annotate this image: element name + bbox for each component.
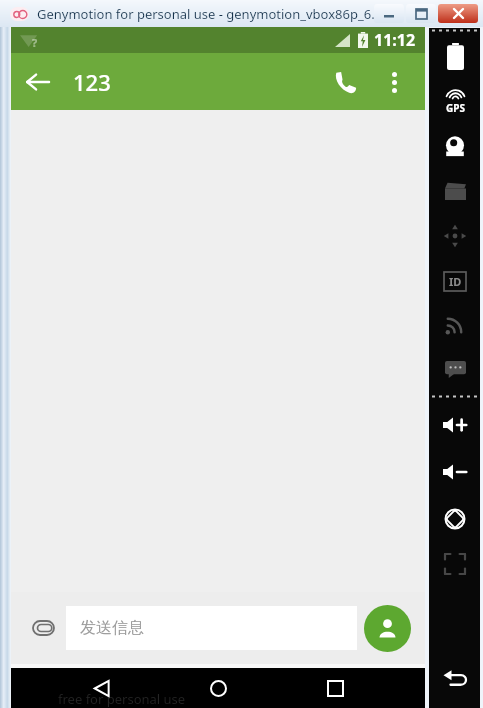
button[interactable]: Home <box>191 668 245 708</box>
button[interactable]: Volume down <box>434 455 476 489</box>
button[interactable]: Send to contact <box>364 605 411 652</box>
button[interactable]: Recents <box>308 668 362 708</box>
button[interactable]: Maximize <box>406 4 436 23</box>
button[interactable]: Back <box>434 660 476 694</box>
button[interactable]: Identifiers <box>434 264 476 298</box>
staticText: 发送信息 <box>80 618 144 638</box>
button[interactable]: Minimize <box>374 4 404 23</box>
staticText: ID <box>449 274 462 289</box>
staticText: GPS <box>446 101 465 115</box>
button[interactable]: Fullscreen <box>434 547 476 581</box>
staticText: 11:12 <box>374 29 416 51</box>
button[interactable]: Messages <box>434 352 476 386</box>
button[interactable]: Close <box>438 4 478 23</box>
button[interactable]: Attach <box>20 605 66 651</box>
button[interactable]: Rotate <box>434 502 476 536</box>
button[interactable]: More options <box>371 59 417 105</box>
button[interactable]: Back <box>11 55 65 109</box>
button[interactable]: Battery <box>434 39 476 73</box>
button[interactable]: Network <box>434 308 476 342</box>
button[interactable]: Call <box>319 56 371 108</box>
staticText: 123 <box>73 67 111 97</box>
button[interactable]: Media <box>434 174 476 208</box>
staticText: free for personal use <box>58 690 186 708</box>
button[interactable]: Back <box>74 668 128 708</box>
staticText: ? <box>32 35 38 50</box>
button[interactable]: Camera <box>434 129 476 163</box>
button[interactable]: 发送信息 <box>66 606 357 650</box>
staticText: Genymotion for personal use - genymotion… <box>37 5 393 23</box>
button[interactable]: GPS <box>434 85 476 119</box>
button[interactable]: Volume up <box>434 408 476 442</box>
button[interactable]: Move <box>434 219 476 253</box>
